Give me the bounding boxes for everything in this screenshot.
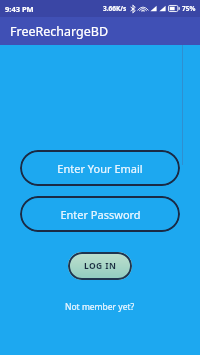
button[interactable]: Enter Your Email [20,150,180,186]
button[interactable]: Enter Password [20,196,180,232]
staticText: 75% [182,4,196,13]
staticText: FreeRechargeBD [10,23,109,40]
staticText: Enter Your Email [57,161,143,176]
staticText: 3.66K/s [103,4,127,13]
staticText: Not member yet? [65,301,135,313]
staticText: Enter Password [60,207,141,222]
button[interactable]: Not member yet? [59,299,141,315]
staticText: 9:43 PM [5,4,34,14]
button[interactable]: LOG IN [68,252,132,280]
staticText: LOG IN [84,260,117,272]
